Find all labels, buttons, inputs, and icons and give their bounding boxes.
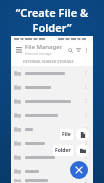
button[interactable]: More: [82, 167, 90, 175]
button[interactable]: More: [11, 150, 93, 164]
button[interactable]: More: [11, 66, 93, 80]
button[interactable]: Search: [66, 46, 74, 54]
button[interactable]: More: [11, 80, 93, 94]
button[interactable]: More: [82, 69, 90, 77]
button[interactable]: More: [82, 83, 90, 91]
button[interactable]: More: [11, 108, 93, 122]
button[interactable]: Sort: [74, 46, 82, 54]
button[interactable]: More: [11, 178, 93, 183]
button[interactable]: More: [82, 125, 90, 133]
button[interactable]: File: [60, 128, 89, 141]
button[interactable]: More: [11, 94, 93, 108]
staticText: Internal storage: [25, 51, 52, 56]
button[interactable]: More: [11, 164, 93, 178]
button[interactable]: More: [82, 178, 90, 183]
button[interactable]: More: [82, 139, 90, 147]
button[interactable]: More: [82, 97, 90, 105]
staticText: “Create File &: [6, 5, 98, 20]
staticText: INTERNAL SHARED STORAGE: [23, 59, 74, 64]
button[interactable]: More: [11, 122, 93, 136]
button[interactable]: More: [11, 136, 93, 150]
button[interactable]: Menu: [14, 45, 23, 54]
button[interactable]: More: [82, 111, 90, 119]
staticText: Folder: [55, 147, 71, 154]
staticText: File Manager: [25, 43, 63, 51]
button[interactable]: Close menu: [70, 161, 88, 179]
staticText: Folder”: [6, 20, 98, 35]
button[interactable]: More options: [82, 46, 90, 54]
button[interactable]: More: [82, 153, 90, 161]
button[interactable]: Folder: [53, 144, 89, 157]
staticText: File: [62, 131, 71, 138]
